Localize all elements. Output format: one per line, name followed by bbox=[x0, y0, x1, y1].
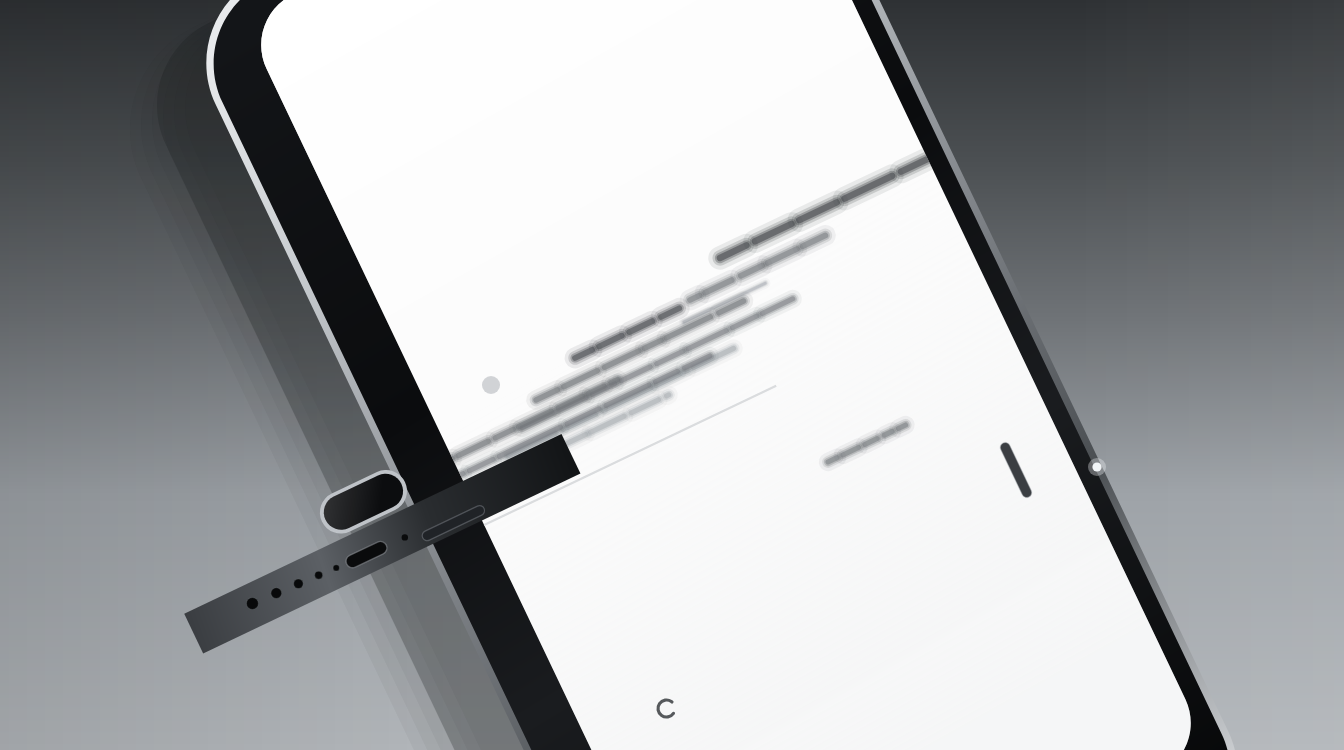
button[interactable]: Power bbox=[985, 430, 1065, 520]
button[interactable]: Home bbox=[330, 610, 450, 680]
button[interactable]: Open link bbox=[226, 520, 366, 576]
